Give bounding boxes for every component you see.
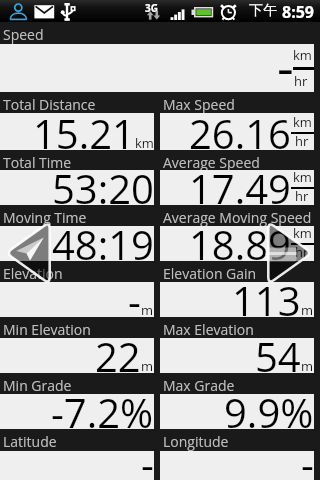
staticText: - [301, 451, 314, 480]
staticText: km [293, 113, 312, 131]
button[interactable]: Average Speed [160, 150, 314, 205]
staticText: Min Grade [3, 376, 72, 395]
staticText: 18.89 [189, 226, 291, 261]
staticText: 22 [95, 338, 141, 373]
button[interactable]: Max Speed [160, 92, 314, 150]
staticText: Average Speed [163, 153, 260, 172]
staticText: Average Moving Speed [163, 208, 312, 227]
staticText: - [128, 282, 141, 317]
staticText: 113 [232, 282, 301, 317]
staticText: Max Grade [163, 376, 235, 395]
staticText: 26.16 [189, 113, 291, 150]
staticText: hr [295, 187, 309, 205]
staticText: Max Elevation [163, 320, 254, 339]
staticText: 15.21 [33, 113, 135, 150]
staticText: 3G [145, 1, 158, 15]
staticText: km [293, 226, 312, 242]
button[interactable]: Moving Time [0, 205, 154, 261]
staticText: -7.2% [51, 394, 154, 429]
button[interactable]: Elevation Gain [160, 261, 314, 317]
staticText: hr [294, 72, 308, 90]
staticText: 8:59 [282, 1, 315, 23]
button[interactable]: Min Elevation [0, 317, 154, 373]
button[interactable]: Next statistics page [262, 216, 318, 290]
staticText: Speed [3, 25, 44, 44]
staticText: 17.49 [189, 170, 291, 205]
staticText: hr [295, 243, 309, 261]
button[interactable]: Previous statistics page [0, 216, 56, 290]
staticText: Total Distance [3, 95, 96, 114]
staticText: Total Time [3, 153, 72, 172]
staticText: 9.9% [224, 394, 314, 429]
staticText: km [293, 46, 312, 64]
staticText: Min Elevation [3, 320, 91, 339]
staticText: Longitude [163, 432, 229, 451]
button[interactable]: Longitude [160, 429, 314, 480]
button[interactable]: Max Elevation [160, 317, 314, 373]
staticText: - [141, 451, 154, 480]
button[interactable]: Min Grade [0, 373, 154, 429]
staticText: hr [295, 132, 309, 150]
staticText: - [277, 44, 294, 78]
staticText: Moving Time [3, 208, 87, 227]
staticText: 54 [255, 338, 301, 373]
button[interactable]: Average Moving Speed [160, 205, 314, 261]
staticText: m [301, 357, 314, 373]
staticText: Elevation [3, 264, 63, 283]
staticText: Elevation Gain [163, 264, 257, 283]
button[interactable]: Latitude [0, 429, 154, 480]
staticText: km [293, 170, 312, 186]
staticText: Max Speed [163, 95, 235, 114]
staticText: km [135, 134, 154, 150]
button[interactable]: Speed [0, 22, 320, 92]
button[interactable]: Total Time [0, 150, 154, 205]
button[interactable]: Total Distance [0, 92, 154, 150]
button[interactable]: Elevation [0, 261, 154, 317]
staticText: m [301, 301, 314, 317]
staticText: 48:19 [52, 226, 154, 261]
staticText: 53:20 [52, 170, 154, 205]
staticText: Latitude [3, 432, 57, 451]
button[interactable]: Max Grade [160, 373, 314, 429]
staticText: m [141, 301, 154, 317]
staticText: m [141, 357, 154, 373]
staticText: 下午 [249, 2, 277, 20]
